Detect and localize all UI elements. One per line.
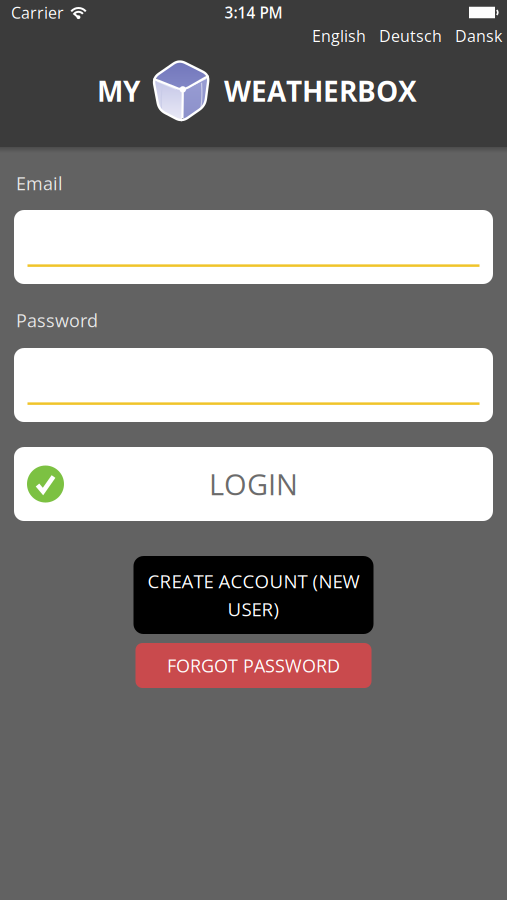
staticText: CREATE ACCOUNT (NEW xyxy=(147,568,359,594)
staticText: WEATHERBOX xyxy=(224,72,417,110)
staticText: USER) xyxy=(227,596,279,622)
staticText: Email xyxy=(16,171,63,195)
staticText: LOGIN xyxy=(209,464,298,504)
staticText: 3:14 PM xyxy=(224,2,282,23)
staticText: Deutsch xyxy=(379,25,442,47)
staticText: Dansk xyxy=(455,25,502,47)
button[interactable]: FORGOT PASSWORD xyxy=(135,643,371,688)
staticText: FORGOT PASSWORD xyxy=(167,653,340,678)
button[interactable]: English xyxy=(312,25,366,47)
button[interactable]: CREATE ACCOUNT (NEW xyxy=(133,556,373,634)
button[interactable]: Dansk xyxy=(455,25,502,47)
staticText: Carrier xyxy=(11,2,64,23)
staticText: English xyxy=(312,25,366,47)
staticText: MY xyxy=(97,72,140,110)
button[interactable]: LOGIN xyxy=(14,447,493,521)
staticText: Password xyxy=(16,308,98,332)
button[interactable]: Deutsch xyxy=(379,25,442,47)
